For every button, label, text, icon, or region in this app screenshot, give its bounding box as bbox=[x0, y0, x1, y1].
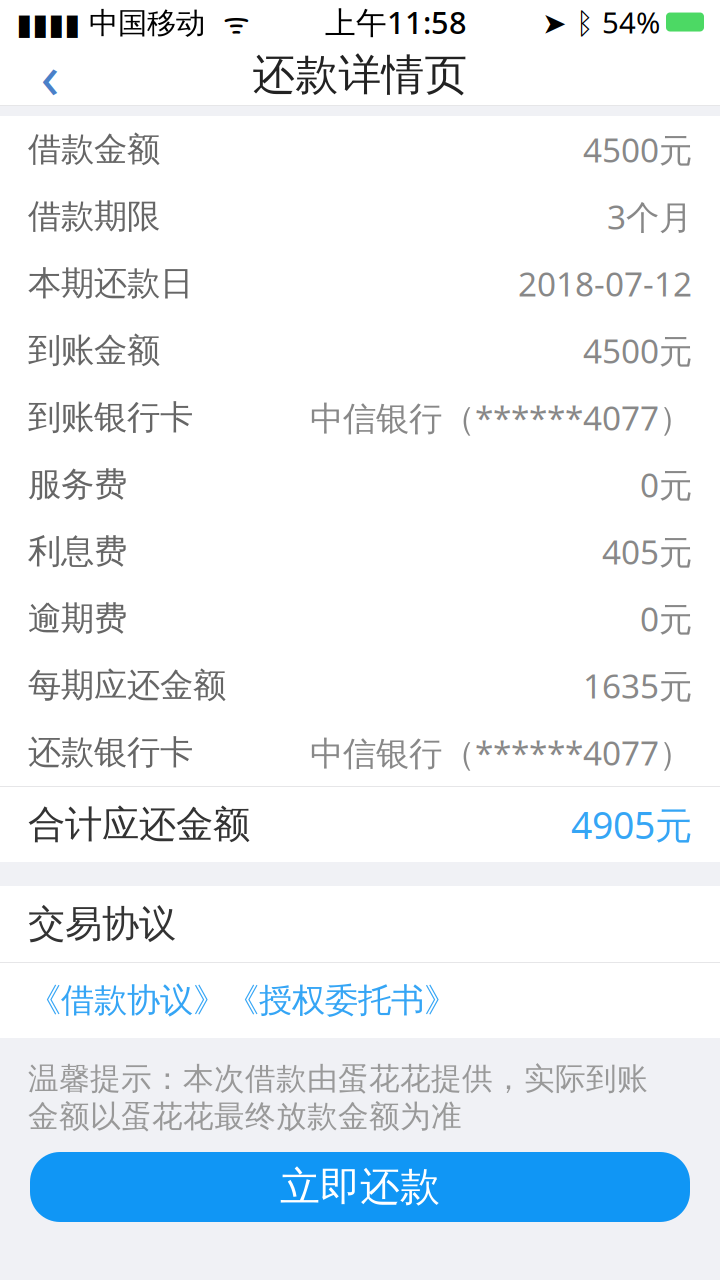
staticText: 逾期费 bbox=[28, 598, 127, 639]
staticText: 每期应还金额 bbox=[28, 665, 226, 706]
staticText: 借款期限 bbox=[28, 196, 160, 237]
staticText: 本期还款日 bbox=[28, 263, 193, 304]
staticText: 0元 bbox=[640, 462, 692, 507]
staticText: ‹ bbox=[40, 34, 59, 116]
staticText: 4500元 bbox=[583, 127, 692, 172]
staticText: 到账金额 bbox=[28, 330, 160, 371]
staticText: 2018-07-12 bbox=[518, 261, 692, 306]
staticText: 借款金额 bbox=[28, 129, 160, 170]
staticText: 《授权委托书》 bbox=[226, 980, 457, 1021]
staticText: ▮▮▮▮ 中国移动 ᯤ bbox=[16, 2, 250, 41]
staticText: 中信银行（******4077） bbox=[310, 730, 692, 775]
staticText: 3个月 bbox=[607, 194, 692, 239]
staticText: 立即还款 bbox=[280, 1162, 440, 1211]
staticText: 到账银行卡 bbox=[28, 397, 193, 438]
staticText: ➤ ᛒ 54% bbox=[542, 2, 660, 41]
staticText: 交易协议 bbox=[28, 901, 176, 947]
staticText: 还款银行卡 bbox=[28, 732, 193, 773]
staticText: 4905元 bbox=[571, 800, 692, 849]
button[interactable]: 立即还款 bbox=[30, 1152, 690, 1222]
staticText: 1635元 bbox=[583, 663, 692, 708]
staticText: 4500元 bbox=[583, 328, 692, 373]
staticText: 0元 bbox=[640, 596, 692, 641]
staticText: 还款详情页 bbox=[252, 49, 467, 101]
button[interactable]: Back bbox=[18, 44, 82, 106]
button[interactable]: 《借款协议》 bbox=[0, 963, 720, 1038]
staticText: 温馨提示：本次借款由蛋花花提供，实际到账金额以蛋花花最终放款金额为准 bbox=[28, 1060, 648, 1135]
staticText: 405元 bbox=[602, 529, 692, 574]
staticText: 上午11:58 bbox=[325, 2, 467, 42]
staticText: 中信银行（******4077） bbox=[310, 395, 692, 440]
staticText: 合计应还金额 bbox=[28, 802, 250, 847]
staticText: 《借款协议》 bbox=[28, 980, 226, 1021]
staticText: 服务费 bbox=[28, 464, 127, 505]
staticText: 利息费 bbox=[28, 531, 127, 572]
